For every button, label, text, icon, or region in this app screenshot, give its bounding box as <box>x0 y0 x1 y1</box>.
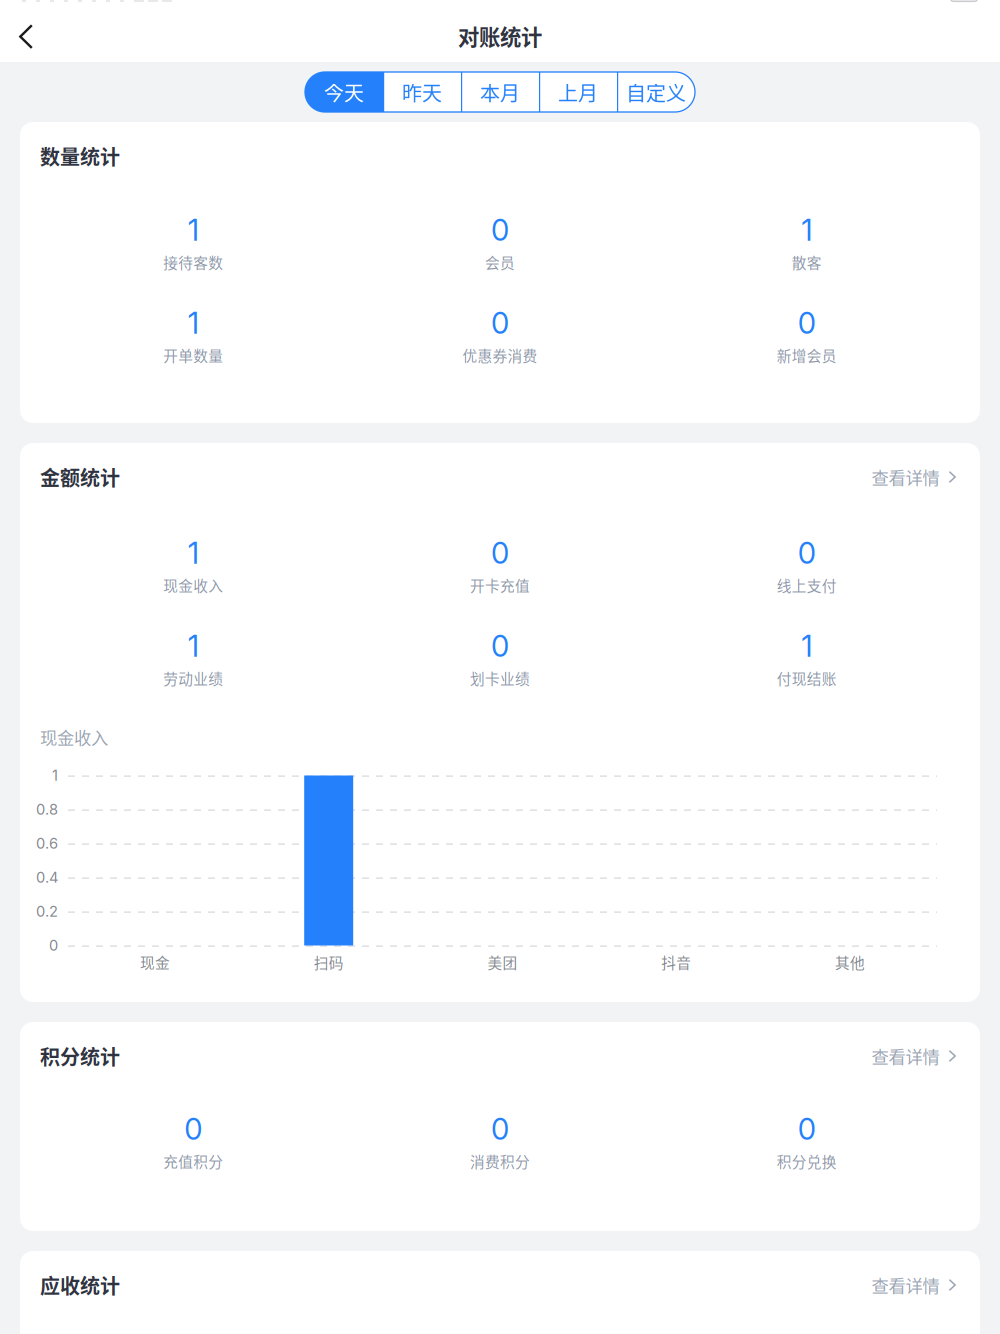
staticText: 劳动业绩 <box>163 667 223 689</box>
staticText: 0 <box>798 1111 816 1147</box>
staticText: 1 <box>188 535 199 571</box>
staticText: 开卡充值 <box>470 574 530 596</box>
button[interactable]: 查看详情 <box>871 1272 960 1298</box>
button[interactable]: 本月 <box>461 72 539 112</box>
staticText: 今天 <box>324 77 364 106</box>
staticText: 积分统计 <box>40 1041 120 1070</box>
staticText: 1 <box>188 212 199 248</box>
staticText: 查看详情 <box>871 1043 939 1069</box>
staticText: 抖音 <box>661 951 691 973</box>
staticText: 线上支付 <box>777 574 837 596</box>
staticText: 积分兑换 <box>777 1150 837 1172</box>
staticText: 应收统计 <box>40 1270 120 1299</box>
staticText: 本月 <box>480 77 520 106</box>
staticText: 付现结账 <box>777 667 837 689</box>
staticText: 1 <box>801 628 812 664</box>
staticText: 现金 <box>140 951 170 973</box>
staticText: 划卡业绩 <box>470 667 530 689</box>
staticText: 其他 <box>835 951 865 973</box>
button[interactable]: 昨天 <box>383 72 461 112</box>
staticText: 1 <box>188 305 199 341</box>
staticText: 0 <box>491 305 509 341</box>
staticText: 查看详情 <box>871 1272 939 1298</box>
staticText: 0 <box>491 1111 509 1147</box>
staticText: 0 <box>798 305 816 341</box>
staticText: 1 <box>52 767 58 784</box>
staticText: 散客 <box>792 251 822 273</box>
staticText: 查看详情 <box>871 464 939 490</box>
staticText: 0.2 <box>36 903 58 920</box>
staticText: 上月 <box>558 77 598 106</box>
staticText: 扫码 <box>314 951 344 973</box>
staticText: 会员 <box>485 251 515 273</box>
staticText: 自定义 <box>626 77 686 106</box>
staticText: 0 <box>491 535 509 571</box>
staticText: 0 <box>49 937 58 954</box>
button[interactable]: 查看详情 <box>871 1043 960 1069</box>
staticText: 0 <box>798 535 816 571</box>
staticText: 昨天 <box>402 77 442 106</box>
button[interactable]: 上月 <box>539 72 617 112</box>
staticText: 0.6 <box>36 835 58 852</box>
staticText: 0 <box>184 1111 202 1147</box>
staticText: 0.4 <box>36 869 58 886</box>
staticText: 对账统计 <box>458 21 542 51</box>
staticText: 现金收入 <box>163 574 223 596</box>
staticText: 接待客数 <box>163 251 223 273</box>
button[interactable]: 今天 <box>305 72 383 112</box>
button[interactable]: Back <box>4 14 48 58</box>
staticText: 现金收入 <box>40 724 108 750</box>
button[interactable]: 自定义 <box>617 72 695 112</box>
staticText: 新增会员 <box>777 344 837 366</box>
staticText: 0 <box>491 212 509 248</box>
button[interactable]: 查看详情 <box>871 464 960 490</box>
staticText: 1 <box>801 212 812 248</box>
staticText: 1 <box>188 628 199 664</box>
staticText: 金额统计 <box>40 462 120 491</box>
staticText: 0.8 <box>36 801 58 818</box>
staticText: 优惠券消费 <box>462 344 537 366</box>
staticText: 0 <box>491 628 509 664</box>
staticText: 充值积分 <box>163 1150 223 1172</box>
staticText: 美团 <box>487 951 517 973</box>
staticText: 数量统计 <box>40 141 120 170</box>
staticText: 消费积分 <box>470 1150 530 1172</box>
staticText: 开单数量 <box>163 344 223 366</box>
